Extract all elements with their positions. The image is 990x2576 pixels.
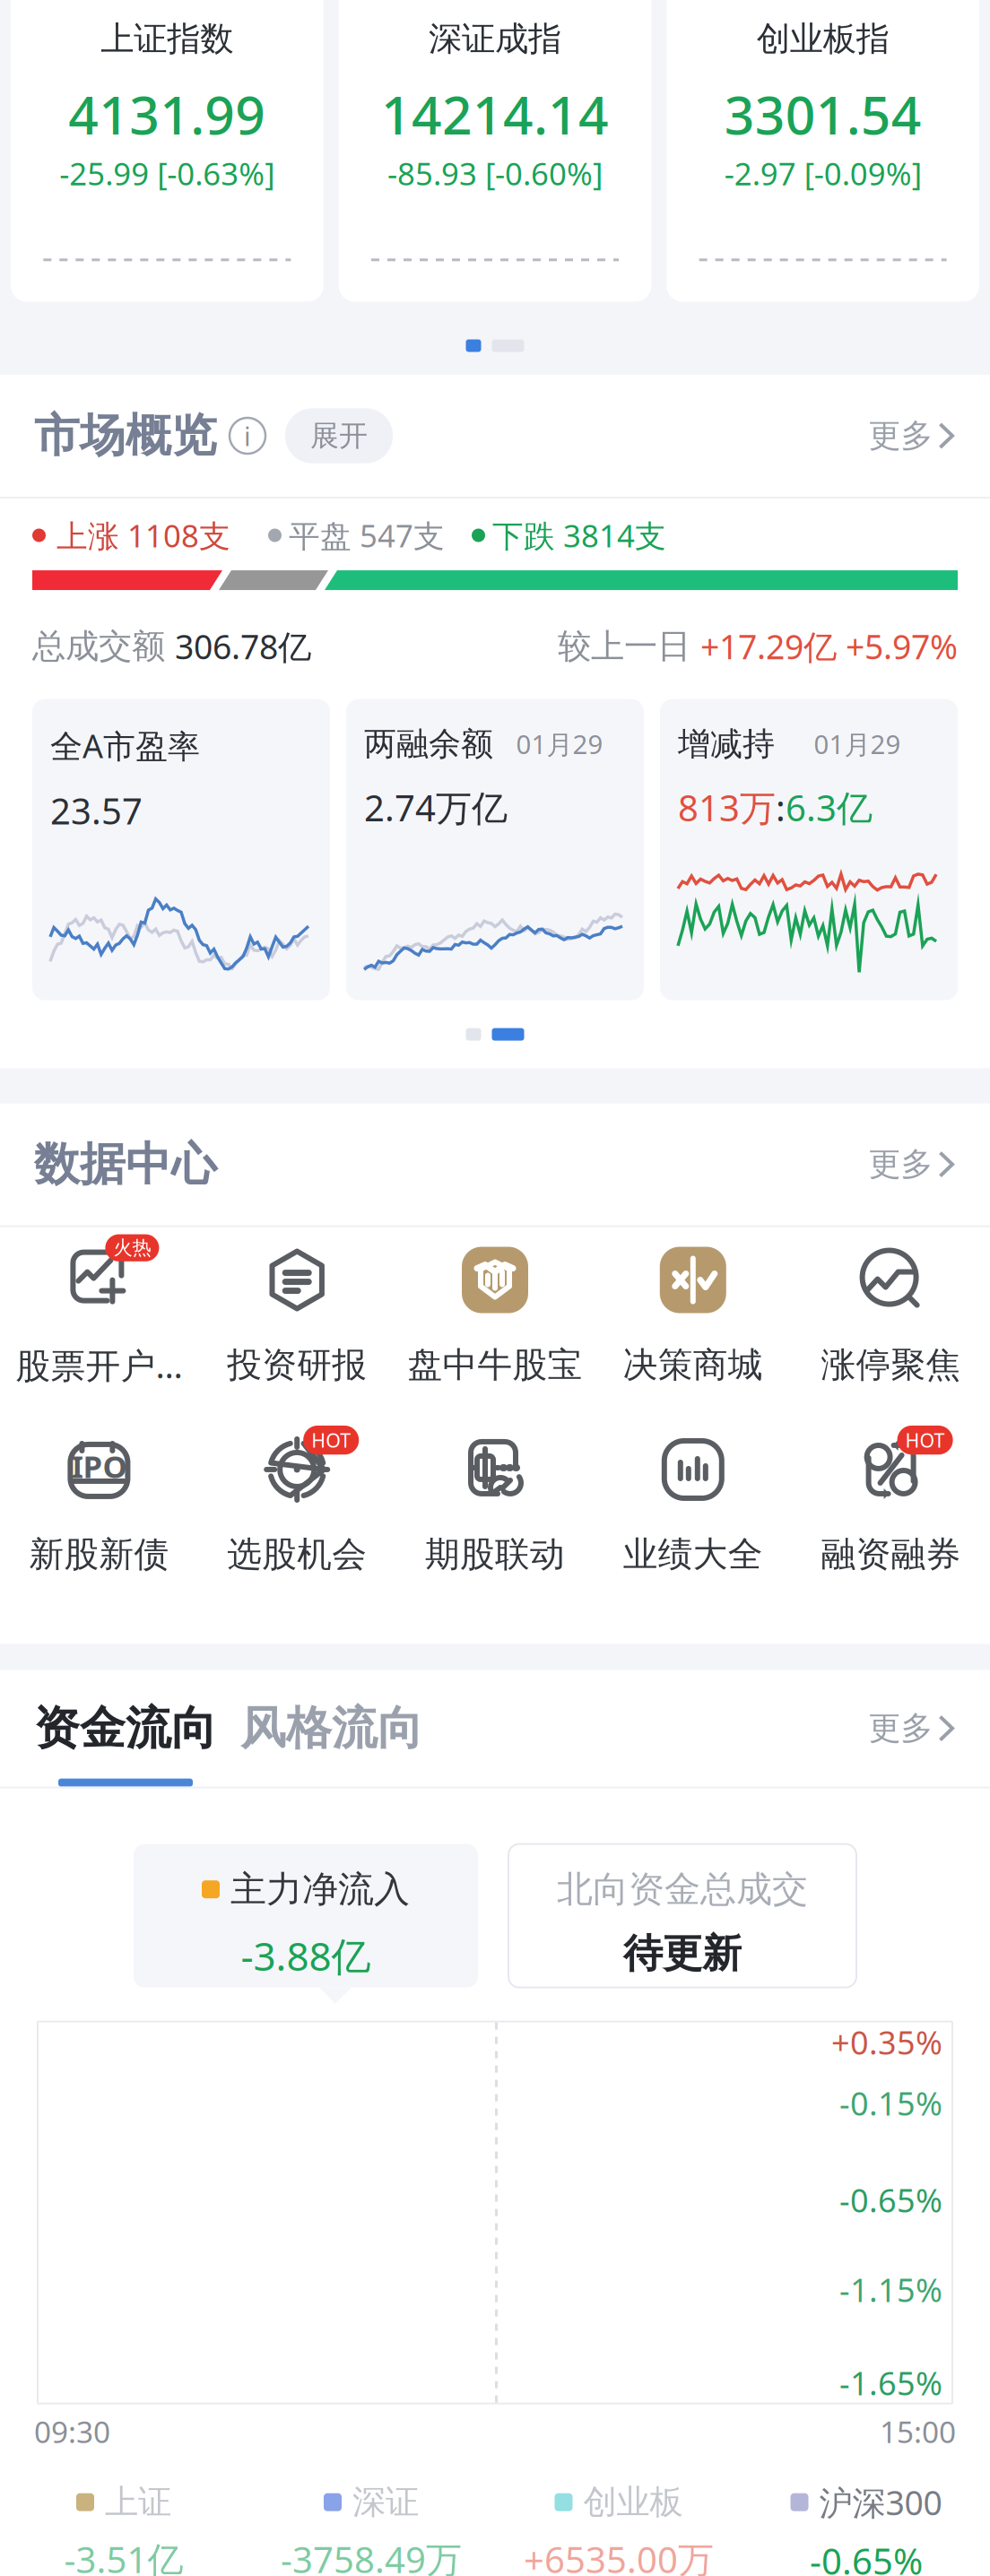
button[interactable]: 决策商城 xyxy=(594,1247,792,1386)
staticText: -25.99 [-0.63%] xyxy=(59,153,275,194)
staticText: +17.29亿 +5.97% xyxy=(700,624,958,669)
staticText: 新股新债 xyxy=(29,1533,169,1576)
staticText: 业绩大全 xyxy=(623,1533,763,1576)
button[interactable]: 创业板指 xyxy=(667,0,979,302)
staticText: -3758.49万 xyxy=(281,2535,462,2576)
button[interactable]: 资金流向 xyxy=(34,1700,217,1756)
staticText: 增减持 xyxy=(678,724,775,764)
staticText: 深证成指 xyxy=(429,18,561,60)
button[interactable]: 深证成指 xyxy=(339,0,651,302)
staticText: 主力净流入 xyxy=(230,1867,410,1911)
staticText: 更多 xyxy=(868,1709,933,1748)
staticText: 4131.99 xyxy=(68,79,266,149)
staticText: 两融余额 xyxy=(364,724,493,764)
staticText: 创业板指 xyxy=(757,18,889,60)
staticText: 深证 xyxy=(352,2482,419,2523)
staticText: 3301.54 xyxy=(724,79,922,149)
button[interactable]: 沪深300 xyxy=(742,2480,990,2576)
staticText: 北向资金总成交 xyxy=(557,1867,808,1911)
staticText: 资金流向 xyxy=(34,1700,217,1756)
staticText: 盘中牛股宝 xyxy=(408,1344,582,1386)
staticText: 更多 xyxy=(868,1145,933,1184)
button[interactable]: 业绩大全 xyxy=(594,1436,792,1576)
button[interactable]: 更多 xyxy=(868,409,956,463)
button[interactable]: 更多 xyxy=(868,1701,956,1755)
staticText: i xyxy=(244,418,251,453)
staticText: 数据中心 xyxy=(34,1136,217,1192)
staticText: 待更新 xyxy=(623,1929,742,1978)
button[interactable]: 涨停聚焦 xyxy=(792,1247,990,1386)
staticText: -1.15% xyxy=(839,2268,942,2311)
staticText: 15:00 xyxy=(880,2412,956,2451)
button[interactable]: 风格流向 xyxy=(217,1700,423,1756)
button[interactable]: 上证 xyxy=(0,2482,247,2576)
staticText: : xyxy=(776,783,786,831)
staticText: 沪深300 xyxy=(819,2480,942,2524)
staticText: 306.78亿 xyxy=(175,624,311,669)
button[interactable]: HOT xyxy=(792,1436,990,1576)
staticText: 展开 xyxy=(310,418,368,453)
button[interactable]: 投资研报 xyxy=(198,1247,396,1386)
staticText: 总成交额 xyxy=(32,626,175,667)
staticText: 期股联动 xyxy=(425,1533,565,1576)
staticText: 全A市盈率 xyxy=(50,724,200,767)
staticText: 市场概览 xyxy=(34,408,217,464)
staticText: -3.51亿 xyxy=(64,2535,183,2576)
staticText: 较上一日 xyxy=(558,626,700,667)
staticText: IPO xyxy=(71,1445,127,1487)
staticText: 上涨 1108支 xyxy=(56,515,230,556)
staticText: -2.97 [-0.09%] xyxy=(724,153,922,194)
staticText: 更多 xyxy=(868,416,933,456)
staticText: +6535.00万 xyxy=(524,2535,714,2576)
staticText: 23.57 xyxy=(50,787,143,834)
staticText: 决策商城 xyxy=(623,1344,763,1386)
staticText: -0.15% xyxy=(839,2082,942,2125)
button[interactable]: 两融余额 xyxy=(346,699,644,1000)
button[interactable]: 上证指数 xyxy=(11,0,323,302)
staticText: 09:30 xyxy=(34,2412,110,2451)
staticText: 2.74万亿 xyxy=(364,783,508,831)
staticText: 01月29 xyxy=(814,726,901,761)
staticText: 6.3亿 xyxy=(786,783,873,831)
staticText: +0.35% xyxy=(831,2021,942,2064)
button[interactable]: 创业板 xyxy=(495,2482,742,2576)
button[interactable]: 期股联动 xyxy=(396,1436,594,1576)
staticText: -85.93 [-0.60%] xyxy=(387,153,603,194)
staticText: 813万 xyxy=(678,783,776,831)
staticText: HOT xyxy=(905,1427,945,1453)
button[interactable]: 全A市盈率 xyxy=(32,699,330,1000)
staticText: 选股机会 xyxy=(227,1533,367,1576)
button[interactable]: 更多 xyxy=(868,1137,956,1191)
staticText: 股票开户... xyxy=(16,1342,182,1388)
staticText: 14214.14 xyxy=(381,79,609,149)
button[interactable]: 火热 xyxy=(0,1245,198,1388)
staticText: -0.65% xyxy=(810,2537,923,2576)
button[interactable]: 增减持 xyxy=(660,699,958,1000)
staticText: 01月29 xyxy=(516,726,603,761)
staticText: 风格流向 xyxy=(240,1700,423,1756)
button[interactable]: 展开 xyxy=(285,408,393,463)
staticText: 涨停聚焦 xyxy=(821,1344,961,1386)
staticText: -1.65% xyxy=(839,2361,942,2404)
button[interactable]: HOT xyxy=(198,1436,396,1576)
staticText: HOT xyxy=(311,1427,351,1453)
staticText: 上证指数 xyxy=(101,18,233,60)
staticText: 下跌 3814支 xyxy=(492,515,666,556)
button[interactable]: IPO xyxy=(0,1436,198,1576)
button[interactable]: 深证 xyxy=(247,2482,495,2576)
staticText: 平盘 547支 xyxy=(289,515,445,556)
staticText: -0.65% xyxy=(839,2179,942,2221)
staticText: 投资研报 xyxy=(227,1344,367,1386)
staticText: 融资融券 xyxy=(821,1533,961,1576)
button[interactable]: 盘中牛股宝 xyxy=(396,1247,594,1386)
staticText: -3.88亿 xyxy=(241,1929,371,1982)
staticText: 上证 xyxy=(105,2482,171,2523)
staticText: 创业板 xyxy=(583,2482,683,2523)
staticText: 火热 xyxy=(113,1236,151,1260)
